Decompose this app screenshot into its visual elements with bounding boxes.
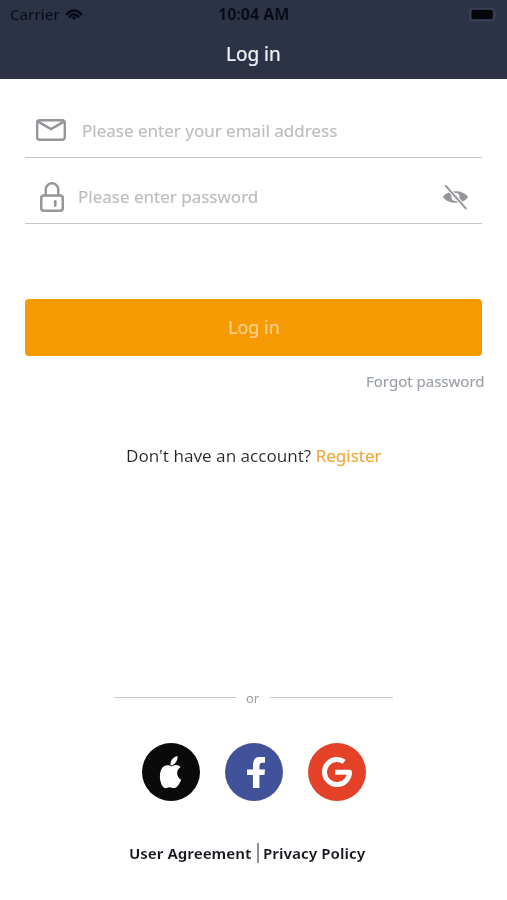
- staticText: Please enter your email address: [82, 119, 338, 142]
- staticText: Privacy Policy: [263, 843, 366, 863]
- button[interactable]: Sign in with Facebook: [225, 743, 283, 801]
- staticText: Please enter password: [78, 185, 259, 208]
- button[interactable]: Privacy Policy: [263, 843, 366, 863]
- button[interactable]: Forgot password: [366, 371, 485, 391]
- staticText: Carrier: [10, 4, 60, 24]
- staticText: User Agreement: [129, 843, 252, 863]
- button[interactable]: User Agreement: [129, 843, 252, 863]
- staticText: Forgot password: [366, 371, 485, 391]
- button[interactable]: Show password: [438, 180, 472, 214]
- staticText: Don't have an account? Register: [126, 444, 382, 467]
- button[interactable]: Don't have an account? Register: [126, 444, 382, 467]
- button[interactable]: Sign in with Google: [308, 743, 366, 801]
- staticText: 10:04 AM: [218, 3, 290, 25]
- staticText: or: [246, 689, 260, 706]
- staticText: Log in: [226, 41, 281, 67]
- button[interactable]: Log in: [25, 299, 482, 356]
- button[interactable]: Sign in with Apple: [142, 743, 200, 801]
- staticText: Log in: [228, 315, 280, 340]
